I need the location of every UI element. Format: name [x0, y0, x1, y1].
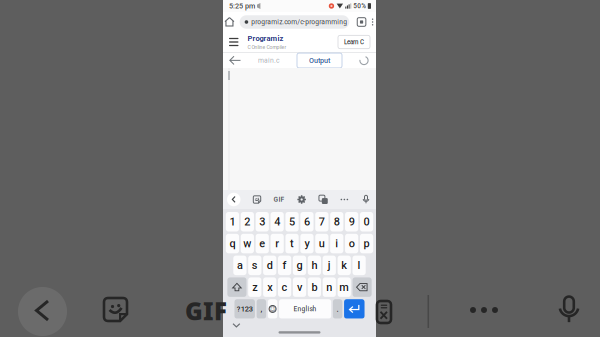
button[interactable]: Tabs	[357, 18, 366, 26]
staticText: main.c	[258, 56, 280, 64]
button[interactable]: r	[271, 234, 284, 253]
button[interactable]: 3	[256, 212, 269, 231]
button[interactable]: p	[360, 234, 373, 253]
button[interactable]: Voice typing	[361, 194, 371, 204]
button[interactable]: More	[341, 199, 348, 200]
button[interactable]: 6	[300, 212, 314, 231]
button[interactable]: .	[333, 299, 342, 319]
staticText: r	[275, 237, 279, 250]
button[interactable]: Menu	[229, 38, 238, 46]
staticText: w	[243, 237, 251, 250]
staticText: x	[267, 281, 272, 293]
button[interactable]: Back	[229, 56, 241, 65]
button[interactable]: 1	[226, 212, 239, 231]
staticText: s	[252, 259, 258, 272]
button[interactable]: n	[323, 277, 336, 297]
button[interactable]: s	[248, 256, 261, 275]
staticText: a	[237, 259, 243, 272]
staticText: 1	[229, 215, 235, 228]
button[interactable]: j	[323, 256, 336, 275]
button[interactable]: Run	[359, 55, 369, 65]
button[interactable]: b	[308, 277, 321, 297]
button[interactable]: v	[293, 277, 306, 297]
staticText: ,	[260, 304, 262, 314]
staticText: GIF	[273, 196, 284, 203]
button[interactable]: Keyboard settings	[297, 195, 306, 204]
button[interactable]: h	[308, 256, 321, 275]
button[interactable]: f	[278, 256, 291, 275]
staticText: 3	[259, 215, 265, 228]
staticText: i	[335, 237, 338, 250]
button[interactable]: z	[248, 277, 261, 297]
button[interactable]: Stickers	[104, 298, 127, 321]
button[interactable]: English	[279, 299, 331, 319]
button[interactable]: a	[233, 256, 246, 275]
staticText: j	[328, 259, 331, 272]
button[interactable]: d	[263, 256, 276, 275]
button[interactable]: Learn C	[338, 35, 370, 49]
button[interactable]: l	[352, 256, 366, 275]
button[interactable]: 9	[345, 212, 358, 231]
button[interactable]: y	[300, 234, 314, 253]
button[interactable]: GIF	[273, 196, 284, 203]
button[interactable]: 4	[271, 212, 284, 231]
staticText: e	[259, 237, 265, 250]
button[interactable]: k	[338, 256, 351, 275]
staticText: 2	[244, 215, 250, 228]
button[interactable]: GIF	[185, 295, 227, 327]
staticText: y	[304, 237, 309, 250]
staticText: 5	[289, 215, 295, 228]
staticText: 7	[319, 215, 325, 228]
button[interactable]: c	[278, 277, 291, 297]
button[interactable]: i	[330, 234, 343, 253]
button[interactable]: Stickers	[253, 196, 261, 203]
staticText: c	[282, 281, 288, 293]
staticText: u	[319, 237, 325, 250]
button[interactable]: Shift	[227, 277, 246, 297]
staticText: z	[252, 281, 257, 293]
button[interactable]: ,	[257, 299, 266, 319]
button[interactable]: 2	[241, 212, 254, 231]
staticText: 6	[304, 215, 310, 228]
button[interactable]: t	[285, 234, 299, 253]
staticText: C Online Compiler	[247, 44, 286, 50]
staticText: d	[267, 259, 273, 272]
button[interactable]: Voice input	[553, 294, 585, 326]
button[interactable]: q	[226, 234, 239, 253]
button[interactable]: 5	[285, 212, 299, 231]
button[interactable]: 7	[315, 212, 328, 231]
staticText: 4	[274, 215, 280, 228]
button[interactable]: x	[263, 277, 276, 297]
button[interactable]: Output	[297, 53, 342, 68]
button[interactable]: g	[293, 256, 306, 275]
button[interactable]: Back	[18, 287, 67, 336]
button[interactable]: Home	[225, 17, 235, 27]
button[interactable]: Close toolbar	[227, 193, 240, 206]
staticText: q	[229, 237, 235, 250]
button[interactable]: w	[241, 234, 254, 253]
staticText: n	[326, 281, 332, 293]
button[interactable]: 0	[360, 212, 373, 231]
button[interactable]: Enter	[344, 299, 365, 319]
staticText: k	[341, 259, 347, 272]
button[interactable]: e	[256, 234, 269, 253]
staticText: f	[283, 259, 287, 272]
staticText: v	[297, 281, 302, 293]
button[interactable]: ?123	[234, 299, 255, 319]
staticText: b	[311, 281, 317, 293]
staticText: 0	[364, 215, 370, 228]
staticText: ☺	[269, 305, 276, 313]
staticText: .	[337, 304, 339, 314]
button[interactable]: m	[338, 277, 351, 297]
button[interactable]: main.c	[258, 56, 280, 64]
button[interactable]: o	[345, 234, 358, 253]
button[interactable]: programiz.com/c-programming	[240, 15, 349, 29]
button[interactable]: u	[315, 234, 328, 253]
staticText: 50%	[353, 2, 366, 10]
button[interactable]: Translate	[319, 195, 328, 204]
button[interactable]: Backspace	[352, 277, 372, 297]
button[interactable]: More options	[470, 307, 498, 313]
button[interactable]: Browser menu	[372, 18, 373, 25]
staticText: Programiz	[247, 34, 283, 43]
button[interactable]: 8	[330, 212, 343, 231]
